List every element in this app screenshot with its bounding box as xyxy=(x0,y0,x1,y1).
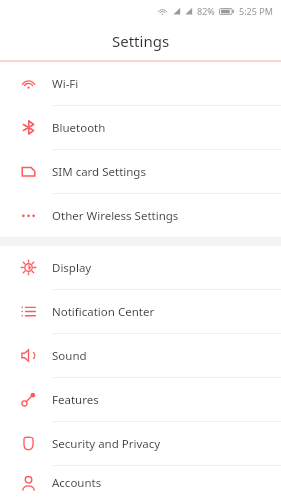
staticText: 82% xyxy=(197,5,215,17)
staticText: 5:25 PM xyxy=(239,5,273,17)
staticText: Settings xyxy=(112,31,170,51)
button[interactable]: Other Wireless Settings xyxy=(0,194,281,237)
button[interactable]: Display xyxy=(0,246,281,290)
staticText: Sound xyxy=(52,348,87,364)
button[interactable]: SIM card Settings xyxy=(0,150,281,194)
staticText: Bluetooth xyxy=(52,120,106,136)
staticText: Display xyxy=(52,260,92,276)
button[interactable]: Notification Center xyxy=(0,290,281,334)
staticText: Other Wireless Settings xyxy=(52,208,179,224)
button[interactable]: Sound xyxy=(0,334,281,378)
staticText: Accounts xyxy=(52,475,102,491)
staticText: Wi-Fi xyxy=(52,76,79,92)
staticText: Features xyxy=(52,392,99,408)
button[interactable]: Security and Privacy xyxy=(0,422,281,466)
staticText: Security and Privacy xyxy=(52,436,161,452)
button[interactable]: Features xyxy=(0,378,281,422)
staticText: SIM card Settings xyxy=(52,164,146,180)
button[interactable]: Bluetooth xyxy=(0,106,281,150)
button[interactable]: Accounts xyxy=(0,466,281,500)
staticText: Notification Center xyxy=(52,304,155,320)
button[interactable]: Wi-Fi xyxy=(0,62,281,106)
